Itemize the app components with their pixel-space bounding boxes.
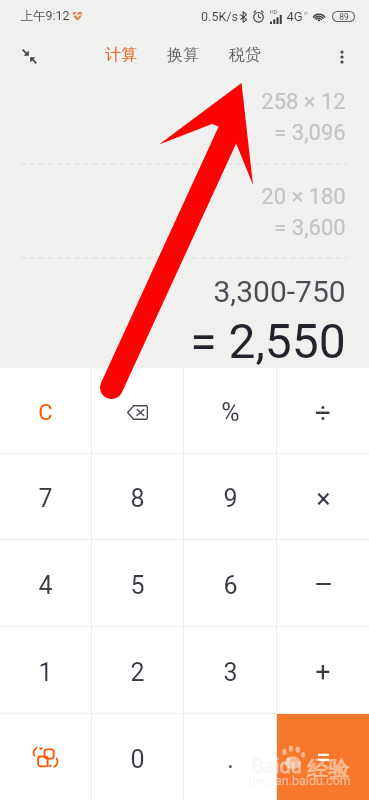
staticText: C (38, 400, 53, 426)
button[interactable]: 5 (92, 540, 183, 626)
button[interactable]: × (277, 454, 369, 539)
staticText: % (221, 398, 240, 427)
staticText: = 3,096 (274, 120, 346, 146)
staticText: 0.5K/s (201, 9, 238, 24)
button[interactable]: . (184, 714, 276, 800)
button[interactable]: 0 (92, 714, 183, 800)
staticText: = 3,600 (274, 215, 346, 241)
staticText: 3 (223, 658, 238, 687)
staticText: 4G (286, 9, 303, 24)
staticText: Baidu (251, 754, 302, 777)
button[interactable]: 换算 (165, 39, 201, 71)
staticText: ᴵᵀ (304, 11, 308, 19)
staticText: 5 (130, 571, 145, 600)
button[interactable]: C (0, 368, 91, 453)
staticText: 1 (38, 658, 53, 687)
button[interactable]: + (277, 627, 369, 713)
button[interactable]: More options (327, 39, 357, 69)
button[interactable]: 1 (0, 627, 91, 713)
staticText: 20 × 180 (261, 184, 346, 210)
button[interactable]: 税贷 (227, 39, 263, 71)
staticText: ÷ (315, 396, 331, 429)
staticText: . (227, 745, 234, 774)
button[interactable]: 7 (0, 454, 91, 539)
staticText: 7 (38, 484, 53, 513)
button[interactable]: 2 (92, 627, 183, 713)
staticText: = (316, 742, 331, 772)
staticText: Baidu (251, 754, 302, 777)
button[interactable]: 8 (92, 454, 183, 539)
button[interactable]: Collapse (14, 39, 44, 69)
staticText: HD (270, 9, 277, 15)
button[interactable]: % (184, 368, 276, 453)
staticText: × (316, 483, 331, 515)
staticText: 2 (130, 658, 145, 687)
button[interactable]: 4 (0, 540, 91, 626)
button[interactable]: Minus (277, 540, 369, 626)
staticText: 经验 (307, 756, 349, 782)
staticText: jingyan.baidu.com (249, 773, 351, 788)
staticText: 6 (223, 571, 238, 600)
staticText: 换算 (167, 45, 199, 65)
staticText: 税贷 (229, 45, 261, 65)
staticText: 4 (38, 571, 53, 600)
button[interactable]: ÷ (277, 368, 369, 453)
staticText: 9 (223, 484, 238, 513)
staticText: 计算 (105, 45, 137, 65)
button[interactable]: 3 (184, 627, 276, 713)
staticText: 8 (130, 484, 145, 513)
staticText: 89 (339, 12, 349, 21)
staticText: 3,300-750 (213, 274, 346, 309)
button[interactable]: 9 (184, 454, 276, 539)
button[interactable]: 计算 (103, 39, 139, 71)
staticText: = 2,550 (190, 313, 346, 369)
staticText: 上午9:12 (20, 8, 70, 24)
staticText: 258 × 12 (261, 89, 346, 115)
button[interactable]: 6 (184, 540, 276, 626)
staticText: + (315, 656, 331, 688)
button[interactable]: Unit converter (0, 714, 91, 800)
staticText: 0 (130, 745, 145, 774)
staticText: jingyan.baidu.com (249, 773, 351, 788)
button[interactable]: Backspace (92, 368, 183, 453)
button[interactable]: = (277, 714, 369, 800)
